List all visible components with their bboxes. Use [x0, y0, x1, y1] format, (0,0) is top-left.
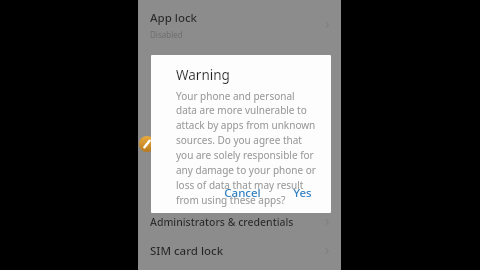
- staticText: Warning: [176, 66, 230, 84]
- staticText: SIM card lock: [150, 243, 224, 259]
- button[interactable]: Administrators & credentials: [138, 205, 341, 239]
- staticText: Your phone and personal data are more vu…: [176, 89, 317, 207]
- staticText: Disabled: [150, 29, 183, 40]
- button[interactable]: App lock: [138, 4, 341, 46]
- staticText: Cancel: [224, 185, 261, 201]
- button[interactable]: Yes: [286, 181, 319, 205]
- staticText: App lock: [150, 10, 197, 26]
- staticText: Administrators & credentials: [150, 215, 294, 229]
- button[interactable]: Cancel: [217, 181, 268, 205]
- button[interactable]: SIM card lock: [138, 233, 341, 269]
- staticText: Yes: [293, 185, 312, 201]
